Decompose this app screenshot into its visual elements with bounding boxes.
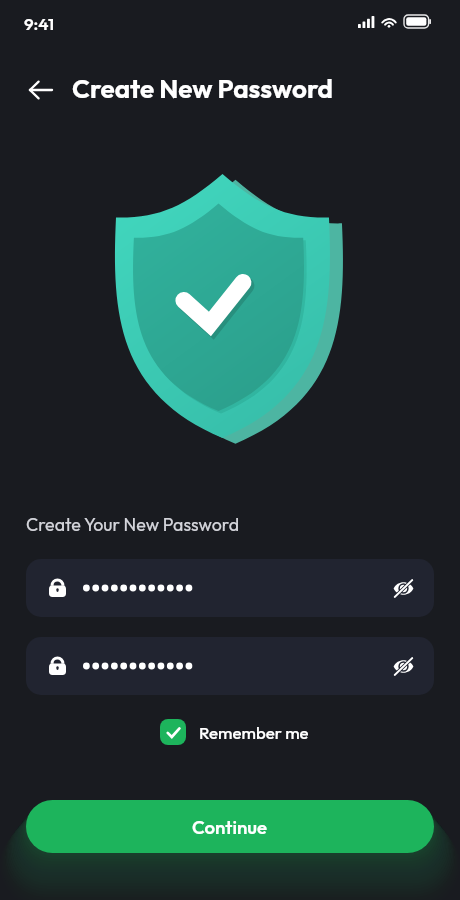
button[interactable]: Show password [386, 649, 420, 683]
button[interactable]: Show password [26, 559, 434, 617]
button[interactable]: Remember me [160, 719, 309, 745]
staticText: Remember me [199, 722, 309, 743]
staticText: Create Your New Password [26, 513, 240, 535]
staticText: 9:41 [24, 13, 55, 34]
button[interactable]: Back [19, 68, 63, 112]
staticText: Create New Password [72, 72, 333, 105]
button[interactable]: Show password [386, 571, 420, 605]
button[interactable]: Continue [26, 800, 434, 853]
staticText: Continue [192, 815, 268, 838]
button[interactable]: Show password [26, 637, 434, 695]
